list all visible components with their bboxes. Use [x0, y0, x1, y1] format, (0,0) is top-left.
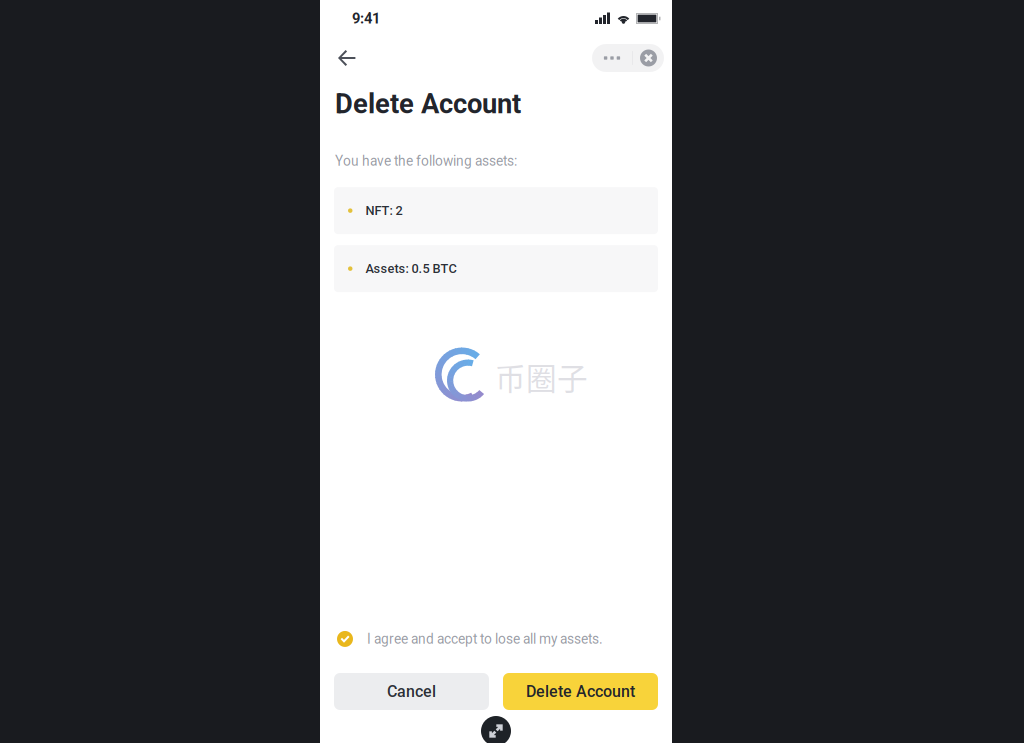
button[interactable]: I agree and accept to lose all my assets…	[337, 631, 603, 647]
staticText: Cancel	[387, 682, 436, 701]
button[interactable]: Cancel	[334, 673, 489, 710]
staticText: You have the following assets:	[335, 153, 517, 169]
staticText: 币圈子	[495, 354, 588, 399]
staticText: Delete Account	[526, 682, 635, 701]
button[interactable]: Expand	[481, 716, 511, 743]
button[interactable]: Delete Account	[503, 673, 658, 710]
button[interactable]: More	[592, 44, 632, 72]
staticText: I agree and accept to lose all my assets…	[367, 631, 603, 647]
button[interactable]: Back	[332, 43, 362, 73]
button[interactable]: Close	[633, 44, 664, 72]
staticText: Delete Account	[335, 88, 521, 120]
staticText: Assets: 0.5 BTC	[365, 261, 456, 276]
staticText: 9:41	[352, 10, 380, 27]
staticText: NFT: 2	[365, 203, 402, 218]
